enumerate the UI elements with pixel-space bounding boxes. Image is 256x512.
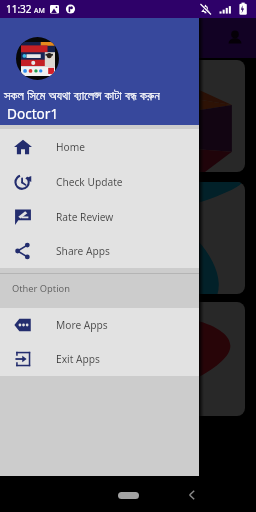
staticText: সকল সিমে অযথা ব্যালেন্স কাটা বন্ধ করুন [4, 87, 160, 104]
staticText: Share Apps [56, 244, 110, 258]
button[interactable]: Home [118, 492, 139, 499]
staticText: Rate Review [56, 210, 114, 224]
staticText: More Apps [56, 318, 108, 332]
button[interactable]: Back [187, 490, 197, 500]
button[interactable]: Check Update [0, 164, 199, 199]
button[interactable] [11, 302, 245, 416]
button[interactable] [11, 60, 245, 172]
button[interactable]: Share Apps [0, 234, 199, 268]
staticText: AM [34, 6, 45, 16]
staticText: 11:32 [6, 2, 32, 16]
button[interactable] [11, 182, 245, 294]
button[interactable]: Account [223, 26, 247, 50]
button[interactable]: Home [0, 129, 199, 164]
button[interactable]: Exit Apps [0, 342, 199, 376]
staticText: Doctor1 [7, 104, 59, 123]
button[interactable]: More Apps [0, 308, 199, 342]
staticText: Talktime Checker [52, 29, 159, 47]
staticText: Check Update [56, 175, 123, 189]
staticText: Home [56, 140, 85, 154]
staticText: Other Option [12, 282, 70, 295]
staticText: Exit Apps [56, 352, 100, 366]
button[interactable]: Rate Review [0, 199, 199, 234]
